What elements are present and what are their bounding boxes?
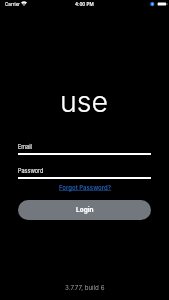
staticText: Email — [18, 144, 32, 151]
staticText: Password — [18, 168, 44, 175]
other: Wi-Fi signal — [21, 2, 27, 6]
staticText: 4:00 PM — [75, 2, 94, 8]
staticText: Login — [76, 206, 94, 214]
button[interactable]: Password — [18, 168, 151, 179]
button[interactable]: Login — [18, 200, 151, 220]
staticText: Carrier — [5, 2, 21, 8]
button[interactable]: Email — [18, 144, 151, 155]
other: Location services and battery status — [150, 2, 168, 7]
staticText: 3.7.77, build 6 — [65, 284, 105, 292]
staticText: use — [60, 84, 109, 118]
button[interactable]: Forgot Password? — [59, 184, 111, 191]
